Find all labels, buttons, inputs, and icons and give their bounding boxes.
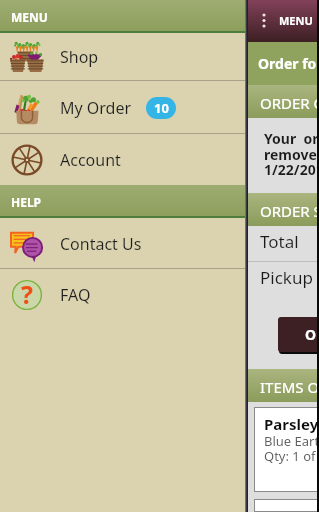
button[interactable]: Order bbox=[278, 317, 319, 352]
staticText: Qty: 1 of 1/2 lb bbox=[264, 447, 319, 465]
button[interactable]: Pickup bbox=[248, 262, 319, 298]
staticText: Parsley, Italian bbox=[264, 414, 319, 434]
button[interactable]: ? bbox=[0, 269, 245, 320]
button[interactable]: Total bbox=[248, 226, 319, 262]
button[interactable]: Account bbox=[0, 134, 245, 185]
staticText: ORDER CONFIRMATION bbox=[260, 93, 319, 113]
staticText: Account bbox=[60, 149, 121, 171]
staticText: MENU bbox=[279, 13, 313, 28]
button[interactable]: More options bbox=[252, 0, 276, 42]
button[interactable]: My Order bbox=[0, 81, 245, 134]
staticText: Lettuce, Romaine bbox=[264, 506, 319, 512]
staticText: FAQ bbox=[60, 284, 91, 306]
staticText: My Order bbox=[60, 97, 132, 119]
button[interactable]: Lettuce, Romaine bbox=[255, 500, 318, 511]
staticText: Order bbox=[305, 325, 319, 344]
staticText: HELP bbox=[11, 194, 42, 210]
staticText: Blue Earth Farm bbox=[264, 432, 319, 450]
staticText: Your order cannot be bbox=[264, 129, 319, 148]
staticText: ORDER SUMMARY bbox=[260, 201, 319, 221]
staticText: MENU bbox=[11, 9, 48, 25]
staticText: Shop bbox=[60, 46, 99, 68]
staticText: remove after bbox=[264, 145, 319, 164]
staticText: Pickup bbox=[260, 266, 313, 289]
staticText: Contact Us bbox=[60, 233, 142, 255]
button[interactable]: Parsley, Italian bbox=[255, 408, 318, 491]
staticText: ? bbox=[21, 277, 33, 311]
staticText: ITEMS ORDERED bbox=[260, 377, 319, 397]
staticText: 10 bbox=[154, 99, 169, 117]
staticText: 1/22/2014 bbox=[264, 160, 319, 179]
staticText: Order for Pickup bbox=[258, 54, 319, 73]
staticText: Total bbox=[260, 230, 299, 253]
button[interactable]: Contact Us bbox=[0, 218, 245, 269]
button[interactable]: Shop bbox=[0, 33, 245, 81]
